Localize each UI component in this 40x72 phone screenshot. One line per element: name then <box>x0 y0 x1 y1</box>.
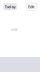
button[interactable]: Today <box>3 3 17 10</box>
staticText: Edit <box>28 4 35 9</box>
staticText: Today <box>5 4 16 9</box>
staticText: note <box>11 28 18 31</box>
button[interactable]: Edit <box>26 3 37 10</box>
